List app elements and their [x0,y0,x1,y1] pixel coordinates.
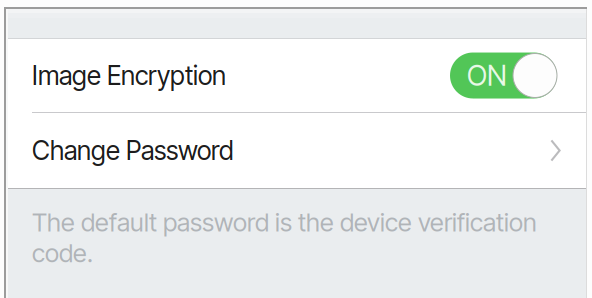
staticText: ON [467,59,507,92]
staticText: Image Encryption [32,60,226,91]
button[interactable]: Image Encryption [8,39,586,112]
staticText: Change Password [32,135,234,166]
button[interactable]: Change Password [8,113,586,188]
staticText: The default password is the device verif… [32,207,537,268]
